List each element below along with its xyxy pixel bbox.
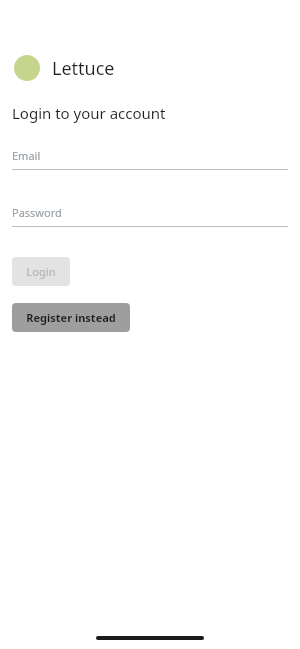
button[interactable]: Login [12, 257, 70, 286]
button[interactable]: Lettuce logo [12, 55, 288, 81]
staticText: Register instead [26, 310, 116, 325]
staticText: Lettuce [52, 56, 115, 81]
staticText: Password [12, 205, 62, 220]
button[interactable]: Email [12, 146, 288, 170]
other: Lettuce logo [14, 55, 40, 81]
staticText: Login to your account [12, 103, 166, 123]
button[interactable]: Password [12, 203, 288, 227]
staticText: Login [26, 264, 56, 279]
button[interactable]: Register instead [12, 303, 130, 332]
staticText: Email [12, 148, 41, 163]
